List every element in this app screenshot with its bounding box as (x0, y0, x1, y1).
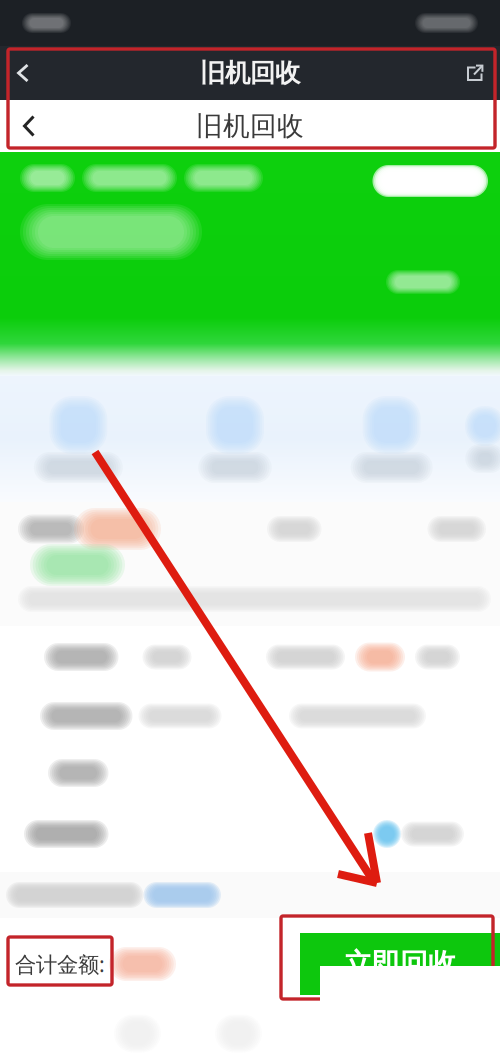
button[interactable]: Share (450, 46, 500, 100)
button[interactable]: Category (157, 396, 313, 483)
button[interactable]: Details (372, 164, 480, 197)
staticText: 立即回收 (344, 947, 456, 981)
button[interactable]: Category (0, 396, 157, 483)
staticText: 旧机回收 (196, 110, 304, 142)
button[interactable]: 立即回收 (300, 933, 500, 995)
button[interactable]: Back (0, 46, 46, 100)
button[interactable]: Back (0, 100, 58, 152)
button[interactable]: Category (313, 396, 470, 483)
staticText: 合计金额: (15, 950, 105, 978)
staticText: 旧机回收 (200, 57, 300, 88)
